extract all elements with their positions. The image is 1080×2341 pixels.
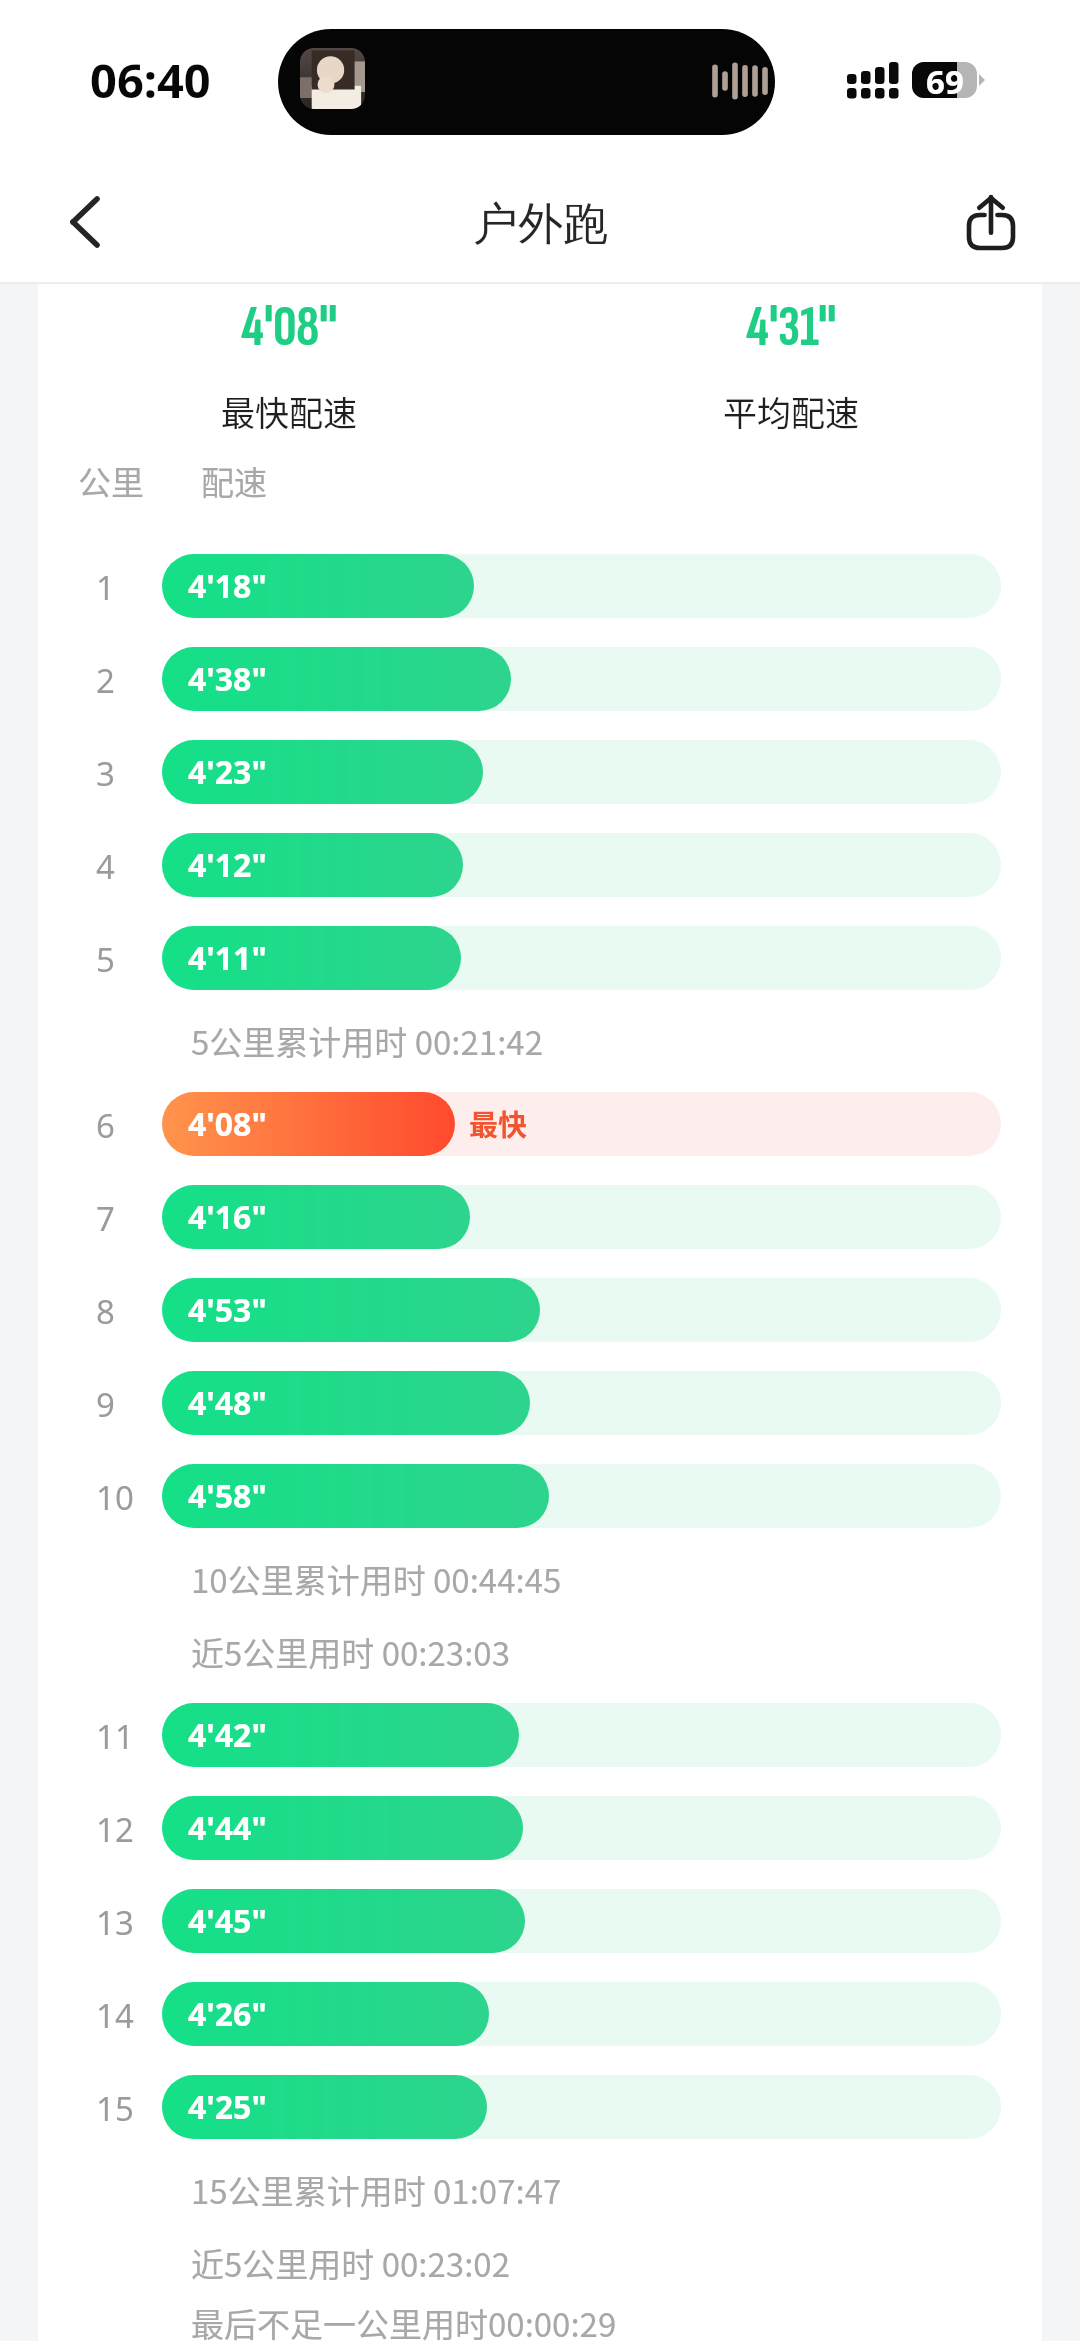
staticText: 4'44" <box>188 1806 267 1850</box>
button[interactable]: 7 <box>38 1170 1042 1263</box>
staticText: 10 <box>96 1475 134 1520</box>
staticText: 4 <box>96 844 115 889</box>
staticText: 4'08" <box>241 293 338 363</box>
staticText: 4'58" <box>188 1474 267 1518</box>
staticText: 4'08" <box>188 1102 267 1146</box>
staticText: 4'31" <box>746 293 837 363</box>
staticText: 8 <box>96 1289 115 1334</box>
staticText: 2 <box>96 658 115 703</box>
button[interactable]: 1 <box>38 539 1042 632</box>
staticText: 4'25" <box>188 2085 267 2129</box>
button[interactable]: 10 <box>38 1449 1042 1542</box>
button[interactable]: 12 <box>38 1781 1042 1874</box>
staticText: 1 <box>96 565 115 610</box>
staticText: 4'23" <box>188 750 267 794</box>
staticText: 配速 <box>201 457 267 505</box>
staticText: 10公里累计用时 00:44:45 <box>191 1555 562 1603</box>
staticText: 15公里累计用时 01:07:47 <box>191 2166 562 2214</box>
staticText: 4'38" <box>188 657 267 701</box>
button[interactable]: 3 <box>38 725 1042 818</box>
staticText: 户外跑 <box>473 196 608 253</box>
staticText: 4'12" <box>188 843 267 887</box>
button[interactable]: 11 <box>38 1688 1042 1781</box>
staticText: 06:40 <box>90 48 211 112</box>
staticText: 4'18" <box>188 564 267 608</box>
staticText: 14 <box>96 1993 134 2038</box>
staticText: 4'45" <box>188 1899 267 1943</box>
button[interactable]: 5 <box>38 911 1042 1004</box>
staticText: 近5公里用时 00:23:03 <box>191 1628 510 1676</box>
staticText: 11 <box>96 1714 134 1759</box>
staticText: 4'11" <box>188 936 267 980</box>
staticText: 7 <box>96 1196 115 1241</box>
button[interactable]: 8 <box>38 1263 1042 1356</box>
staticText: 平均配速 <box>723 387 859 436</box>
staticText: 3 <box>96 751 115 796</box>
staticText: 4'48" <box>188 1381 267 1425</box>
button[interactable]: 2 <box>38 632 1042 725</box>
staticText: 公里 <box>78 457 144 505</box>
staticText: 4'53" <box>188 1288 267 1332</box>
staticText: 15 <box>96 2086 134 2131</box>
button[interactable]: 9 <box>38 1356 1042 1449</box>
staticText: 4'42" <box>188 1713 267 1757</box>
staticText: 9 <box>96 1382 115 1427</box>
staticText: 12 <box>96 1807 134 1852</box>
button[interactable]: 15 <box>38 2060 1042 2153</box>
staticText: 最快 <box>469 1102 528 1144</box>
button[interactable]: 4 <box>38 818 1042 911</box>
button[interactable]: Back <box>40 177 130 267</box>
staticText: 4'16" <box>188 1195 267 1239</box>
staticText: 5 <box>96 937 115 982</box>
staticText: 5公里累计用时 00:21:42 <box>191 1017 543 1065</box>
staticText: 最后不足一公里用时00:00:29 <box>191 2299 617 2341</box>
staticText: 13 <box>96 1900 134 1945</box>
button[interactable]: Share <box>946 177 1036 267</box>
staticText: 69 <box>926 59 964 95</box>
button[interactable]: 6 <box>38 1077 1042 1170</box>
button[interactable]: 14 <box>38 1967 1042 2060</box>
button[interactable]: 13 <box>38 1874 1042 1967</box>
staticText: 6 <box>96 1103 115 1148</box>
staticText: 近5公里用时 00:23:02 <box>191 2239 510 2287</box>
staticText: 4'26" <box>188 1992 267 2036</box>
staticText: 最快配速 <box>221 387 357 436</box>
